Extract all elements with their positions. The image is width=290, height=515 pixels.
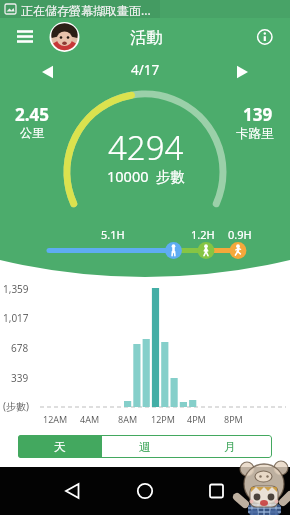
staticText: 卡路里 <box>236 126 274 142</box>
staticText: 139 <box>243 103 273 126</box>
staticText: 1,017 <box>3 311 29 325</box>
staticText: 8PM <box>224 413 243 425</box>
staticText: 339 <box>11 371 29 385</box>
staticText: 5.1H <box>101 227 125 242</box>
button[interactable] <box>36 60 60 84</box>
staticText: 8AM <box>118 413 138 425</box>
staticText: 0.9H <box>228 227 252 242</box>
button[interactable] <box>49 21 80 52</box>
staticText: 公里 <box>20 125 44 140</box>
button[interactable] <box>193 467 241 515</box>
staticText: 10000 步數 <box>107 166 186 186</box>
button[interactable]: 天 <box>18 435 102 458</box>
staticText: 活動 <box>130 27 163 48</box>
button[interactable] <box>250 22 280 52</box>
button[interactable]: 週 <box>102 435 187 458</box>
staticText: 4AM <box>80 413 100 425</box>
staticText: 12PM <box>151 413 175 425</box>
staticText: 月 <box>224 439 236 454</box>
staticText: 4/17 <box>131 61 160 79</box>
staticText: 678 <box>11 341 29 355</box>
staticText: 2.45 <box>15 103 49 126</box>
staticText: 1,359 <box>3 282 29 296</box>
button[interactable] <box>48 467 96 515</box>
staticText: 1.2H <box>191 227 215 242</box>
staticText: 週 <box>139 439 151 454</box>
staticText: (步數) <box>3 399 29 413</box>
staticText: 天 <box>54 439 66 454</box>
button[interactable] <box>230 60 254 84</box>
button[interactable]: 月 <box>187 435 272 458</box>
staticText: 4PM <box>187 413 206 425</box>
button[interactable] <box>121 467 169 515</box>
button[interactable] <box>10 24 40 54</box>
staticText: 12AM <box>43 413 68 425</box>
staticText: 正在儲存螢幕擷取畫面... <box>21 2 151 18</box>
staticText: 4294 <box>108 125 184 170</box>
